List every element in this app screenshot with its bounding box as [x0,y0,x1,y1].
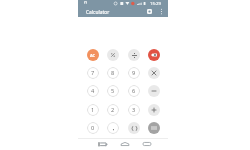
button[interactable]: History [145,7,154,16]
button[interactable]: 7 [87,67,99,79]
button[interactable]: 2 [107,104,119,116]
button[interactable] [107,122,119,134]
staticText: 9 [132,69,136,77]
button[interactable]: 0 [87,122,99,134]
button[interactable] [107,49,119,61]
staticText: AC [90,53,96,58]
staticText: 15:29 [150,0,161,6]
button[interactable]: 9 [128,67,140,79]
staticText: 0 [91,124,95,132]
button[interactable]: 6 [128,85,140,97]
staticText: 8 [111,69,115,77]
button[interactable] [148,67,160,79]
button[interactable]: 5 [107,85,119,97]
staticText: 6 [132,87,136,95]
staticText: 4 [91,87,95,95]
button[interactable]: 8 [107,67,119,79]
button[interactable]: 1 [87,104,99,116]
button[interactable]: Recents [141,138,153,150]
button[interactable]: Equals [148,122,160,134]
button[interactable]: More options [157,7,166,16]
button[interactable]: Delete [148,49,160,61]
staticText: 5 [111,87,115,95]
button[interactable] [128,122,140,134]
staticText: Calculator [86,9,110,16]
button[interactable] [128,49,140,61]
button[interactable] [148,85,160,97]
button[interactable]: 4 [87,85,99,97]
staticText: 1 [91,106,95,114]
button[interactable]: Back [97,138,109,150]
staticText: 3 [132,106,136,114]
button[interactable]: AC [87,49,99,61]
button[interactable]: 3 [128,104,140,116]
button[interactable]: Home [119,138,131,150]
staticText: 2 [111,106,115,114]
button[interactable] [148,104,160,116]
staticText: 7 [91,69,95,77]
